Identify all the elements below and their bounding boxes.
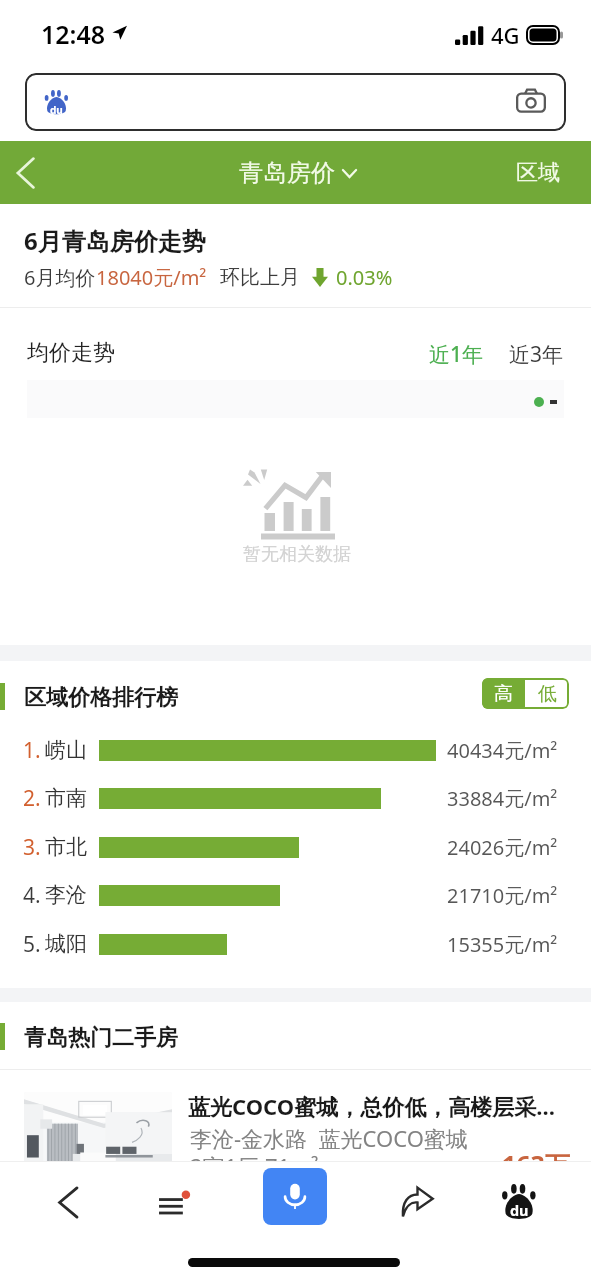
button[interactable]: Voice search — [263, 1168, 327, 1225]
button[interactable]: 青岛房价 — [239, 158, 357, 188]
staticText: du — [510, 1201, 529, 1221]
staticText: 18040元/m² — [96, 264, 207, 291]
staticText: 6月青岛房价走势 — [24, 224, 206, 257]
staticText: 4. — [23, 881, 41, 910]
button[interactable]: 高 — [482, 678, 525, 709]
staticText: 青岛热门二手房 — [24, 1024, 178, 1052]
staticText: 低 — [538, 682, 557, 706]
staticText: 15355元/m² — [447, 931, 558, 958]
staticText: 24026元/m² — [447, 834, 558, 861]
staticText: 青岛房价 — [239, 158, 335, 188]
button[interactable]: du — [25, 73, 566, 131]
staticText: 区域价格排行榜 — [24, 684, 178, 712]
staticText: 蓝光COCO蜜城，总价低，高楼层采… — [188, 1091, 566, 1121]
staticText: 区域 — [516, 159, 560, 187]
staticText: 6月均价 — [24, 264, 96, 291]
staticText: 2室1厅 71m² — [190, 1151, 319, 1161]
button[interactable]: 低 — [525, 678, 569, 709]
button[interactable]: 区域 — [504, 149, 572, 197]
button[interactable]: 5. — [0, 920, 591, 968]
staticText: 高 — [494, 682, 513, 706]
button[interactable]: Camera search — [516, 87, 546, 117]
staticText: 3. — [23, 833, 41, 862]
staticText: 城阳 — [45, 931, 87, 957]
staticText: 0.03% — [336, 264, 393, 291]
staticText: 市南 — [45, 785, 87, 811]
button[interactable]: 近1年 — [429, 340, 484, 369]
staticText: 2. — [23, 784, 41, 813]
button[interactable]: 2. — [0, 774, 591, 822]
button[interactable]: Baidu home — [488, 1171, 550, 1233]
staticText: 均价走势 — [27, 339, 115, 367]
staticText: 163万 — [502, 1147, 570, 1161]
staticText: 12:48 — [41, 17, 106, 51]
button[interactable]: 近3年 — [509, 340, 564, 369]
button[interactable]: 蓝光COCO蜜城，总价低，高楼层采… — [0, 1069, 591, 1161]
button[interactable]: Share — [386, 1171, 448, 1233]
staticText: 环比上月 — [220, 265, 300, 290]
staticText: du — [50, 103, 63, 117]
staticText: 33884元/m² — [447, 785, 558, 812]
staticText: 5. — [23, 930, 41, 959]
button[interactable]: 4. — [0, 871, 591, 919]
button[interactable]: Back — [37, 1171, 99, 1233]
staticText: 1. — [23, 736, 41, 765]
staticText: 近3年 — [509, 340, 564, 369]
staticText: 近1年 — [429, 340, 484, 369]
staticText: 市北 — [45, 834, 87, 860]
staticText: 崂山 — [45, 737, 87, 763]
button[interactable]: Menu — [143, 1171, 205, 1233]
staticText: 李沧 — [45, 882, 87, 908]
staticText: 李沧-金水路 蓝光COCO蜜城 — [190, 1123, 468, 1153]
staticText: 40434元/m² — [447, 737, 558, 764]
button[interactable]: 1. — [0, 726, 591, 774]
button[interactable]: Back — [2, 141, 50, 204]
staticText: 暂无相关数据 — [243, 543, 351, 566]
staticText: 21710元/m² — [447, 882, 558, 909]
staticText: 4G — [491, 20, 520, 50]
button[interactable]: 3. — [0, 823, 591, 871]
